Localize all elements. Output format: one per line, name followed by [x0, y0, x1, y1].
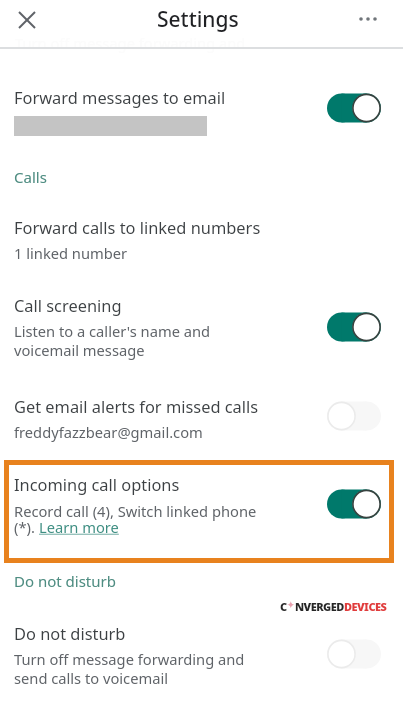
staticText: Listen to a caller's name and voicemail … — [14, 321, 211, 360]
button[interactable]: Close — [10, 3, 44, 37]
button[interactable]: Switch off — [319, 396, 389, 436]
button[interactable]: Switch off — [319, 634, 389, 674]
staticText: Forward messages to email — [14, 86, 226, 108]
staticText: C — [280, 599, 287, 614]
button[interactable]: Call screening — [0, 288, 403, 364]
button[interactable]: Get email alerts for missed calls — [0, 389, 403, 445]
staticText: Call screening — [14, 294, 122, 316]
staticText: NVERGED — [295, 599, 344, 614]
button[interactable]: More options — [353, 5, 383, 35]
button[interactable]: Forward messages to email — [0, 79, 403, 139]
staticText: (*). — [14, 517, 39, 537]
staticText: Get email alerts for missed calls — [14, 395, 259, 417]
button[interactable]: Switch on — [319, 484, 389, 524]
staticText: Turn off message forwarding and send cal… — [14, 649, 245, 688]
staticText: Settings — [157, 5, 239, 34]
button[interactable]: Forward calls to linked numbers — [0, 210, 403, 266]
button[interactable]: Incoming call options — [9, 465, 389, 558]
button[interactable]: Switch on — [319, 88, 389, 128]
staticText: Incoming call options — [14, 473, 180, 495]
staticText: Turn off message forwarding and — [15, 33, 246, 53]
button[interactable]: Switch on — [319, 307, 389, 347]
button[interactable]: Do not disturb — [0, 616, 403, 692]
button[interactable]: Learn more — [39, 517, 119, 537]
staticText: 1 linked number — [14, 243, 128, 263]
staticText: Do not disturb — [14, 622, 126, 644]
staticText: Record call (4), Switch linked phone — [14, 501, 257, 521]
staticText: ✦ — [287, 600, 295, 610]
staticText: Forward calls to linked numbers — [14, 216, 261, 238]
staticText: Calls — [14, 167, 47, 187]
staticText: Do not disturb — [14, 571, 116, 591]
staticText: DEVICES — [344, 599, 387, 614]
staticText: freddyfazzbear@gmail.com — [14, 422, 203, 442]
